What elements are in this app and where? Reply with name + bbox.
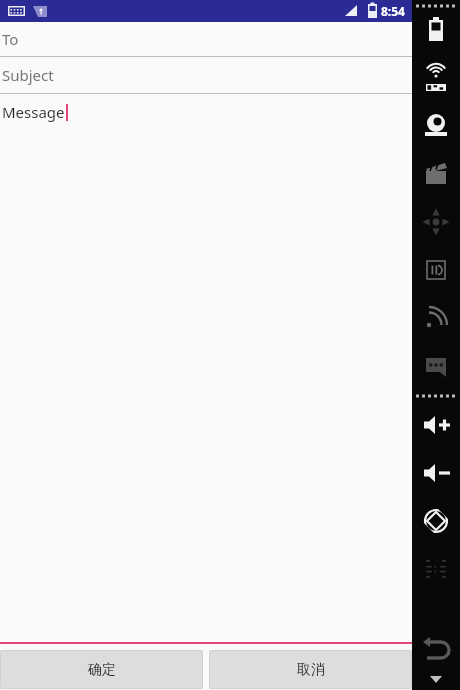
staticText: 取消 <box>297 661 325 679</box>
staticText: To <box>2 29 19 49</box>
staticText: Message <box>2 102 65 122</box>
button[interactable]: Subject <box>0 57 412 93</box>
staticText: 确定 <box>88 661 116 679</box>
button[interactable]: 确定 <box>0 650 203 689</box>
button[interactable]: 取消 <box>209 650 412 689</box>
staticText: Subject <box>2 65 54 85</box>
button[interactable]: Message <box>0 94 412 130</box>
button[interactable]: To <box>0 22 412 56</box>
staticText: 8:54 <box>381 3 405 19</box>
